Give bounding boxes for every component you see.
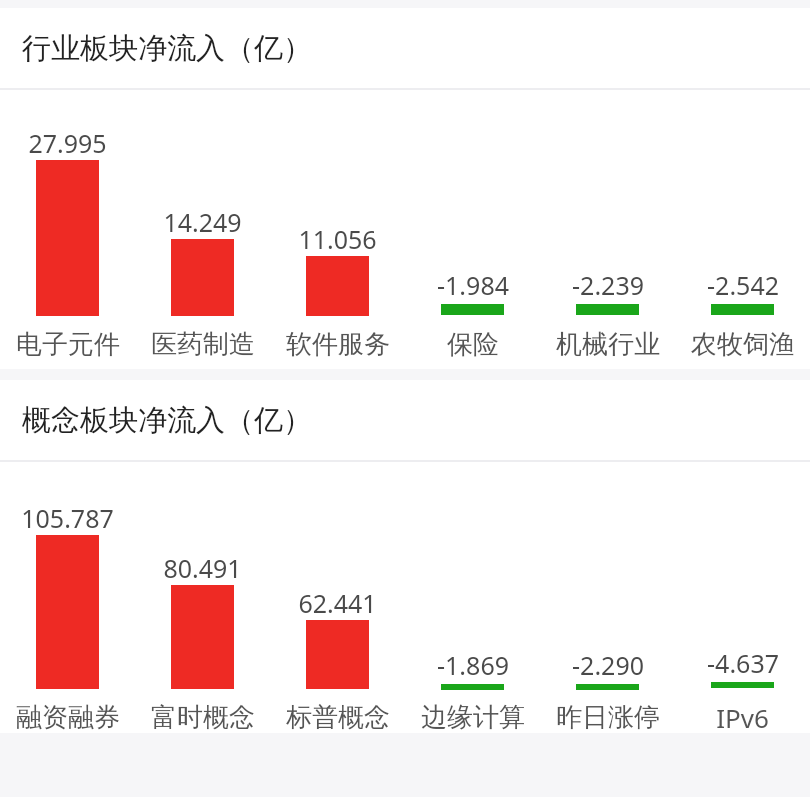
staticText: 14.249	[163, 205, 242, 239]
staticText: 概念板块净流入（亿）	[22, 402, 312, 439]
button[interactable]: 概念板块净流入（亿）	[0, 380, 810, 460]
staticText: -2.239	[572, 268, 644, 302]
button[interactable]: 标普概念	[270, 697, 405, 737]
staticText: 11.056	[298, 222, 377, 256]
staticText: -2.542	[707, 268, 779, 302]
staticText: 机械行业	[556, 328, 660, 361]
button[interactable]: 软件服务	[270, 324, 405, 364]
button[interactable]: 27.995	[0, 126, 135, 160]
button[interactable]: 医药制造	[135, 324, 270, 364]
button[interactable]: -1.869	[405, 648, 540, 682]
staticText: -1.869	[437, 648, 509, 682]
button[interactable]: 机械行业	[540, 324, 675, 364]
button[interactable]: 富时概念	[135, 697, 270, 737]
button[interactable]: 62.441	[270, 586, 405, 620]
staticText: -2.290	[572, 648, 644, 682]
staticText: 行业板块净流入（亿）	[22, 30, 312, 67]
button[interactable]: 80.491	[135, 551, 270, 585]
staticText: 27.995	[28, 126, 107, 160]
staticText: -4.637	[707, 646, 779, 680]
button[interactable]: 保险	[405, 324, 540, 364]
button[interactable]: -2.290	[540, 648, 675, 682]
staticText: 富时概念	[151, 701, 255, 734]
button[interactable]: 11.056	[270, 222, 405, 256]
button[interactable]: -1.984	[405, 268, 540, 302]
staticText: 电子元件	[16, 328, 120, 361]
staticText: -1.984	[437, 268, 509, 302]
button[interactable]: -2.239	[540, 268, 675, 302]
button[interactable]: 电子元件	[0, 324, 135, 364]
staticText: 62.441	[298, 586, 377, 620]
staticText: 农牧饲渔	[691, 328, 795, 361]
button[interactable]: IPv6	[675, 697, 810, 737]
button[interactable]: 融资融券	[0, 697, 135, 737]
button[interactable]: -2.542	[675, 268, 810, 302]
staticText: 保险	[447, 328, 499, 361]
staticText: 医药制造	[151, 328, 255, 361]
staticText: 融资融券	[16, 701, 120, 734]
staticText: IPv6	[716, 700, 769, 735]
staticText: 软件服务	[286, 328, 390, 361]
staticText: 105.787	[21, 501, 114, 535]
staticText: 80.491	[163, 551, 242, 585]
button[interactable]: 边缘计算	[405, 697, 540, 737]
button[interactable]: 行业板块净流入（亿）	[0, 8, 810, 88]
button[interactable]: 14.249	[135, 205, 270, 239]
button[interactable]: 昨日涨停	[540, 697, 675, 737]
staticText: 标普概念	[286, 701, 390, 734]
button[interactable]: 105.787	[0, 501, 135, 535]
staticText: 昨日涨停	[556, 701, 660, 734]
staticText: 边缘计算	[421, 701, 525, 734]
button[interactable]: -4.637	[675, 646, 810, 680]
button[interactable]: 农牧饲渔	[675, 324, 810, 364]
